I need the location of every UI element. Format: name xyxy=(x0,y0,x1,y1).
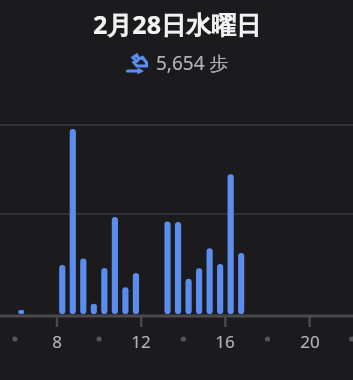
button[interactable]: 2月28日水曜日 xyxy=(0,7,353,41)
staticText: 12 xyxy=(125,330,157,353)
button[interactable]: Steps xyxy=(0,50,353,76)
other: Steps xyxy=(125,51,150,76)
staticText: 5,654 歩 xyxy=(156,50,229,76)
staticText: 20 xyxy=(294,330,326,353)
staticText: 2月28日水曜日 xyxy=(93,7,261,41)
staticText: 16 xyxy=(209,330,241,353)
staticText: 8 xyxy=(41,330,73,353)
